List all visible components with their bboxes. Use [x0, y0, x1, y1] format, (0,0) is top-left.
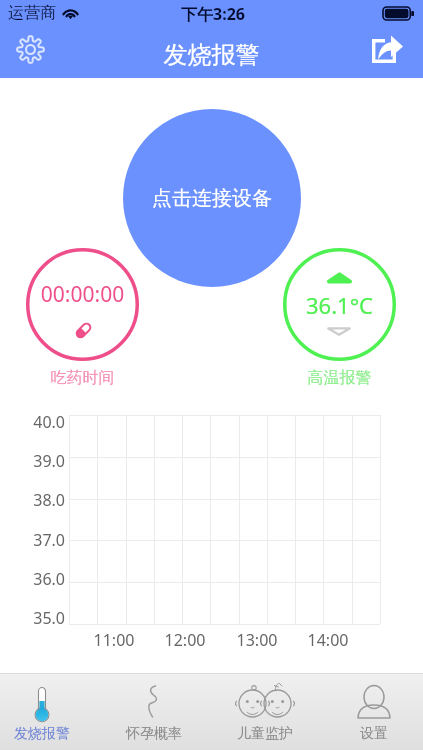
staticText: 高温报警	[283, 368, 396, 388]
button[interactable]: 设置	[346, 677, 402, 749]
button[interactable]: Share	[371, 35, 404, 64]
staticText: 12:00	[160, 629, 210, 651]
staticText: 儿童监护	[237, 725, 293, 743]
button[interactable]: 36.1°C	[283, 248, 396, 361]
staticText: 怀孕概率	[126, 725, 182, 743]
staticText: 40.0	[29, 411, 65, 433]
staticText: 36.0	[29, 568, 65, 590]
staticText: 14:00	[303, 629, 353, 651]
button[interactable]: Settings	[16, 35, 45, 64]
staticText: 37.0	[29, 529, 65, 551]
staticText: 发烧报警	[0, 40, 423, 70]
button[interactable]: 儿童监护	[237, 677, 293, 749]
staticText: 36.1°C	[283, 290, 396, 320]
staticText: 点击连接设备	[152, 186, 272, 211]
staticText: 39.0	[29, 450, 65, 472]
staticText: 11:00	[89, 629, 139, 651]
staticText: 13:00	[232, 629, 282, 651]
button[interactable]: 发烧报警	[14, 677, 70, 749]
staticText: 发烧报警	[14, 725, 70, 743]
button[interactable]: 00:00:00	[26, 248, 139, 361]
staticText: 下午3:26	[181, 3, 245, 25]
staticText: 38.0	[29, 489, 65, 511]
staticText: 吃药时间	[26, 368, 139, 388]
staticText: 00:00:00	[26, 280, 139, 309]
staticText: 35.0	[29, 607, 65, 629]
button[interactable]: 点击连接设备	[123, 109, 301, 287]
button[interactable]: 怀孕概率	[126, 677, 182, 749]
staticText: 设置	[360, 725, 388, 743]
staticText: 运营商	[8, 3, 56, 23]
